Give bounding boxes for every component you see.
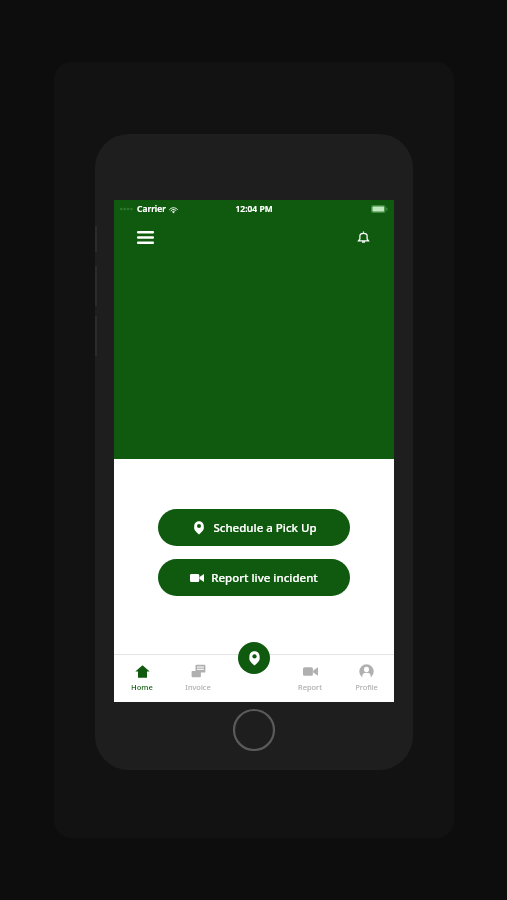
button[interactable]: Menu bbox=[130, 222, 160, 252]
staticText: Invoice bbox=[185, 682, 211, 692]
button[interactable]: Notifications bbox=[348, 222, 378, 252]
button[interactable]: Schedule a Pick Up bbox=[158, 509, 350, 546]
button[interactable]: Profile bbox=[338, 654, 394, 702]
button[interactable]: Track location bbox=[238, 642, 270, 674]
staticText: Carrier bbox=[137, 203, 166, 215]
staticText: Schedule a Pick Up bbox=[213, 520, 317, 536]
button[interactable]: Invoice bbox=[170, 654, 226, 702]
button[interactable]: Report bbox=[282, 654, 338, 702]
staticText: Profile bbox=[355, 682, 378, 692]
staticText: Report bbox=[298, 682, 322, 692]
staticText: Report live incident bbox=[211, 570, 318, 586]
button[interactable]: Report live incident bbox=[158, 559, 350, 596]
staticText: 12:04 PM bbox=[235, 203, 273, 215]
staticText: Home bbox=[131, 682, 153, 692]
button[interactable]: Home bbox=[114, 654, 170, 702]
